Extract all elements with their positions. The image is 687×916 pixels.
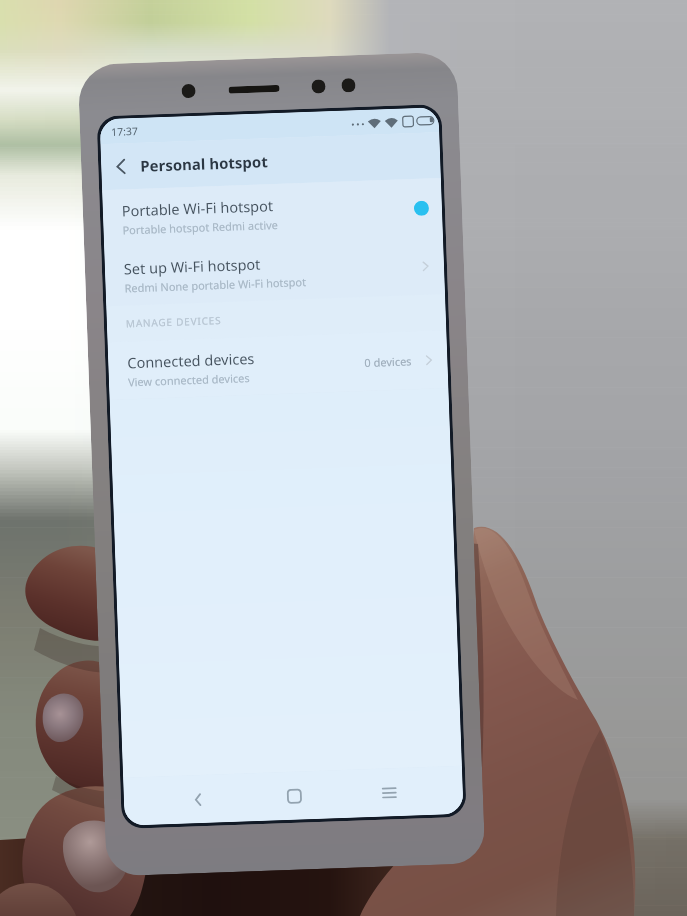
staticText: 0 devices [364,353,413,370]
button[interactable]: Back [105,150,138,183]
staticText: View connected devices [128,370,250,389]
button[interactable]: Home [271,773,317,818]
button[interactable]: Set up Wi-Fi hotspot [104,236,445,306]
staticText: MANAGE DEVICES [126,313,222,330]
button[interactable]: Connected devices [107,330,448,400]
staticText: Personal hotspot [140,151,268,176]
staticText: Set up Wi-Fi hotspot [123,254,261,278]
staticText: Connected devices [127,348,255,372]
button[interactable]: Portable Wi-Fi hotspot [102,178,443,248]
button[interactable]: Recent apps [366,770,411,815]
staticText: Redmi None portable Wi-Fi hotspot [124,274,307,295]
staticText: Portable hotspot Redmi active [122,217,279,238]
staticText: 17:37 [111,124,138,139]
staticText: Portable Wi-Fi hotspot [121,195,274,220]
button[interactable]: Back [175,776,221,822]
